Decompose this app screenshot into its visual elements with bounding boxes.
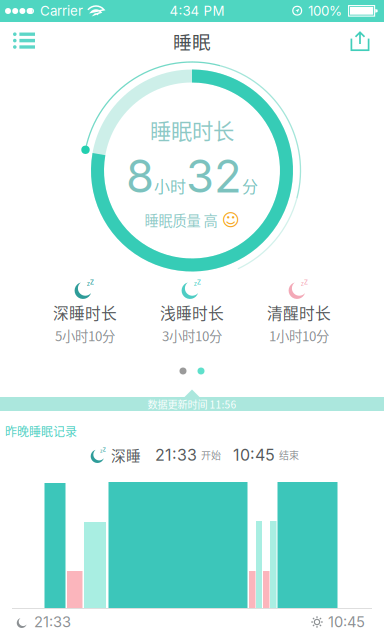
staticText: Carrier xyxy=(40,3,83,19)
staticText: 睡眠质量 高 xyxy=(144,210,217,230)
staticText: 睡眠时长 xyxy=(150,115,234,145)
staticText: z xyxy=(100,448,103,454)
staticText: z xyxy=(197,277,201,286)
staticText: 浅睡时长 xyxy=(160,301,224,324)
staticText: 10:45 xyxy=(233,445,275,465)
staticText: 分 xyxy=(242,174,258,197)
staticText: 8 xyxy=(126,149,154,203)
staticText: 睡眠 xyxy=(173,27,211,54)
staticText: 数据更新时间 11:56 xyxy=(147,397,236,411)
staticText: 昨晚睡眠记录 xyxy=(5,422,77,440)
button[interactable]: Menu xyxy=(2,22,46,60)
staticText: z xyxy=(194,280,197,287)
staticText: 小时 xyxy=(154,174,186,197)
staticText: 32 xyxy=(186,149,242,203)
staticText: z xyxy=(304,277,308,286)
staticText: 21:33 xyxy=(155,445,197,465)
button[interactable]: Share xyxy=(338,22,382,60)
staticText: 深睡时长 xyxy=(53,301,117,324)
staticText: z xyxy=(102,445,106,453)
staticText: 21:33 xyxy=(34,613,71,631)
staticText: z xyxy=(87,280,90,287)
staticText: 10:45 xyxy=(328,613,365,631)
staticText: z xyxy=(301,280,304,287)
staticText: ☺ xyxy=(221,210,239,230)
staticText: 4:34 PM xyxy=(169,3,224,19)
staticText: 结束 xyxy=(279,448,299,462)
staticText: 深睡 xyxy=(111,444,141,466)
staticText: 开始 xyxy=(201,448,221,462)
staticText: 清醒时长 xyxy=(267,301,331,324)
staticText: 1小时10分 xyxy=(269,326,329,345)
staticText: 5小时10分 xyxy=(55,326,115,345)
staticText: z xyxy=(90,277,94,286)
staticText: 100% xyxy=(308,3,342,19)
staticText: 3小时10分 xyxy=(162,326,222,345)
